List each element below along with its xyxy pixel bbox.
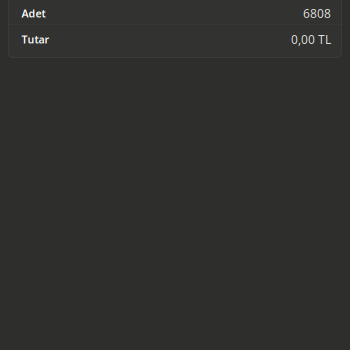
button[interactable]: Adet xyxy=(8,0,341,24)
button[interactable]: Tutar xyxy=(8,26,341,57)
staticText: Tutar xyxy=(21,32,49,47)
staticText: 6808 xyxy=(303,5,331,21)
staticText: Adet xyxy=(21,6,45,21)
staticText: 0,00 TL xyxy=(291,31,331,47)
